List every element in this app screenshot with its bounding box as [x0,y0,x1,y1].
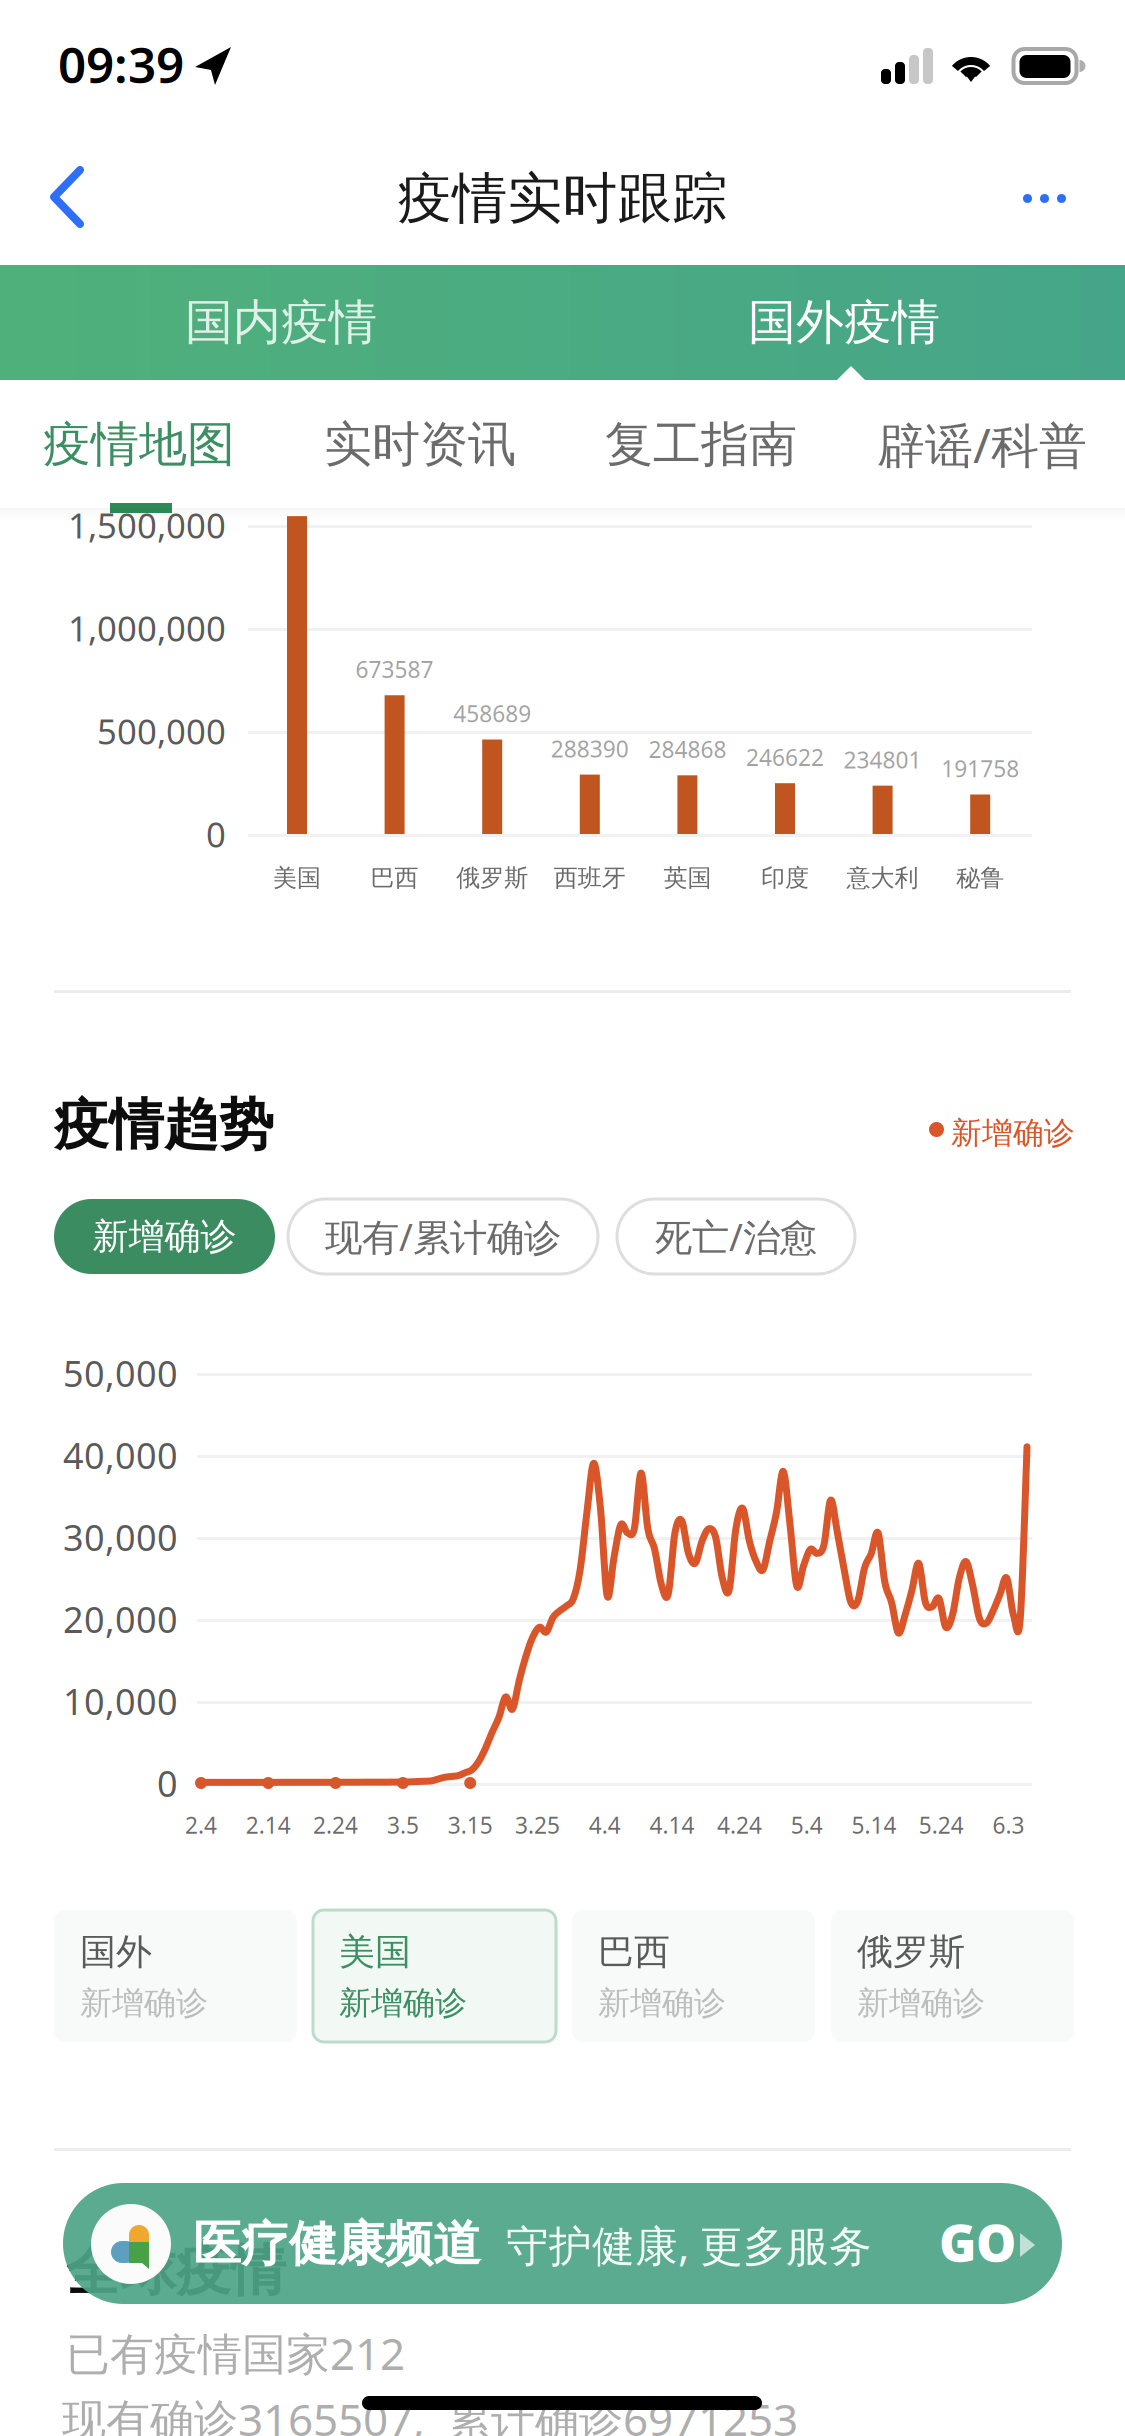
button[interactable]: 现有/累计确诊 [288,1199,598,1274]
staticText: 巴西 [371,863,419,893]
staticText: 4.14 [650,1810,695,1840]
staticText: 10,000 [63,1677,178,1725]
staticText: 全球疫情 [66,2237,286,2304]
staticText: 美国 [273,863,321,893]
staticText: 现有/累计确诊 [325,1212,561,1261]
staticText: 守护健康, 更多服务 [506,2217,872,2273]
staticText: 新增确诊 [598,1983,726,2023]
staticText: 国外疫情 [748,293,940,352]
staticText: 新增确诊 [951,1114,1075,1152]
staticText: 284868 [648,734,726,764]
button[interactable]: Back [18,144,128,252]
staticText: 现有确诊3165507, 累计确诊6971253 [62,2390,798,2436]
staticText: 1,500,000 [68,502,226,548]
staticText: 已有疫情国家212 [66,2324,405,2382]
staticText: 疫情地图 [43,415,235,474]
button[interactable]: 死亡/治愈 [617,1199,855,1274]
staticText: 5.14 [851,1810,896,1840]
staticText: 4.4 [589,1810,621,1840]
staticText: 0 [157,1759,178,1807]
staticText: 实时资讯 [324,415,516,474]
button[interactable]: 国外疫情 [563,265,1125,380]
button[interactable]: 美国 [313,1910,556,2042]
staticText: 辟谣/科普 [877,413,1087,476]
staticText: 09:39 [58,31,184,97]
staticText: 0 [206,811,226,857]
staticText: 3.25 [515,1810,560,1840]
staticText: 英国 [663,863,711,893]
button[interactable]: 巴西 [572,1910,815,2042]
staticText: 美国 [339,1930,411,1974]
staticText: 5.24 [919,1810,964,1840]
staticText: 30,000 [63,1513,178,1561]
staticText: 新增确诊 [80,1983,208,2023]
button[interactable]: 疫情地图 [0,381,279,508]
button[interactable]: More options [985,144,1105,252]
staticText: 458689 [453,698,531,729]
staticText: 俄罗斯 [456,863,528,893]
button[interactable]: 俄罗斯 [831,1910,1074,2042]
staticText: 印度 [761,863,809,893]
staticText: 西班牙 [554,863,626,893]
staticText: 5.4 [791,1810,823,1840]
staticText: 2.4 [185,1810,217,1840]
staticText: 2.14 [246,1810,291,1840]
staticText: 复工指南 [605,415,797,474]
staticText: 50,000 [63,1349,178,1397]
button[interactable]: 医疗健康频道 [63,2183,1062,2304]
staticText: 500,000 [97,708,226,754]
staticText: 巴西 [598,1930,670,1974]
staticText: 俄罗斯 [857,1930,965,1974]
staticText: 疫情趋势 [54,1091,274,1158]
staticText: 234801 [844,745,922,775]
staticText: 40,000 [63,1431,178,1479]
staticText: 246622 [746,742,824,772]
button[interactable]: 复工指南 [561,381,841,508]
staticText: 新增确诊 [857,1983,985,2023]
staticText: 医疗健康频道 [193,2214,481,2273]
staticText: 意大利 [847,863,919,893]
staticText: 疫情实时跟踪 [397,165,727,232]
staticText: 2.24 [313,1810,358,1840]
staticText: 国外 [80,1930,152,1974]
staticText: GO [939,2208,1016,2276]
button[interactable]: 辟谣/科普 [842,381,1122,508]
button[interactable]: 国内疫情 [0,265,562,380]
button[interactable]: 新增确诊 [54,1199,275,1274]
staticText: 1,000,000 [68,605,226,651]
staticText: 20,000 [63,1595,178,1643]
staticText: 673587 [356,654,434,684]
staticText: 288390 [551,733,629,764]
staticText: 4.24 [717,1810,762,1840]
staticText: 死亡/治愈 [655,1212,817,1261]
button[interactable]: 国外 [54,1910,297,2042]
staticText: 国内疫情 [185,293,377,352]
staticText: 191758 [941,753,1019,783]
button[interactable]: 实时资讯 [280,381,560,508]
staticText: 秘鲁 [956,863,1004,893]
staticText: 新增确诊 [339,1983,467,2023]
staticText: 3.15 [448,1810,493,1840]
staticText: 3.5 [387,1810,419,1840]
staticText: 新增确诊 [92,1214,236,1259]
staticText: 6.3 [993,1810,1025,1840]
